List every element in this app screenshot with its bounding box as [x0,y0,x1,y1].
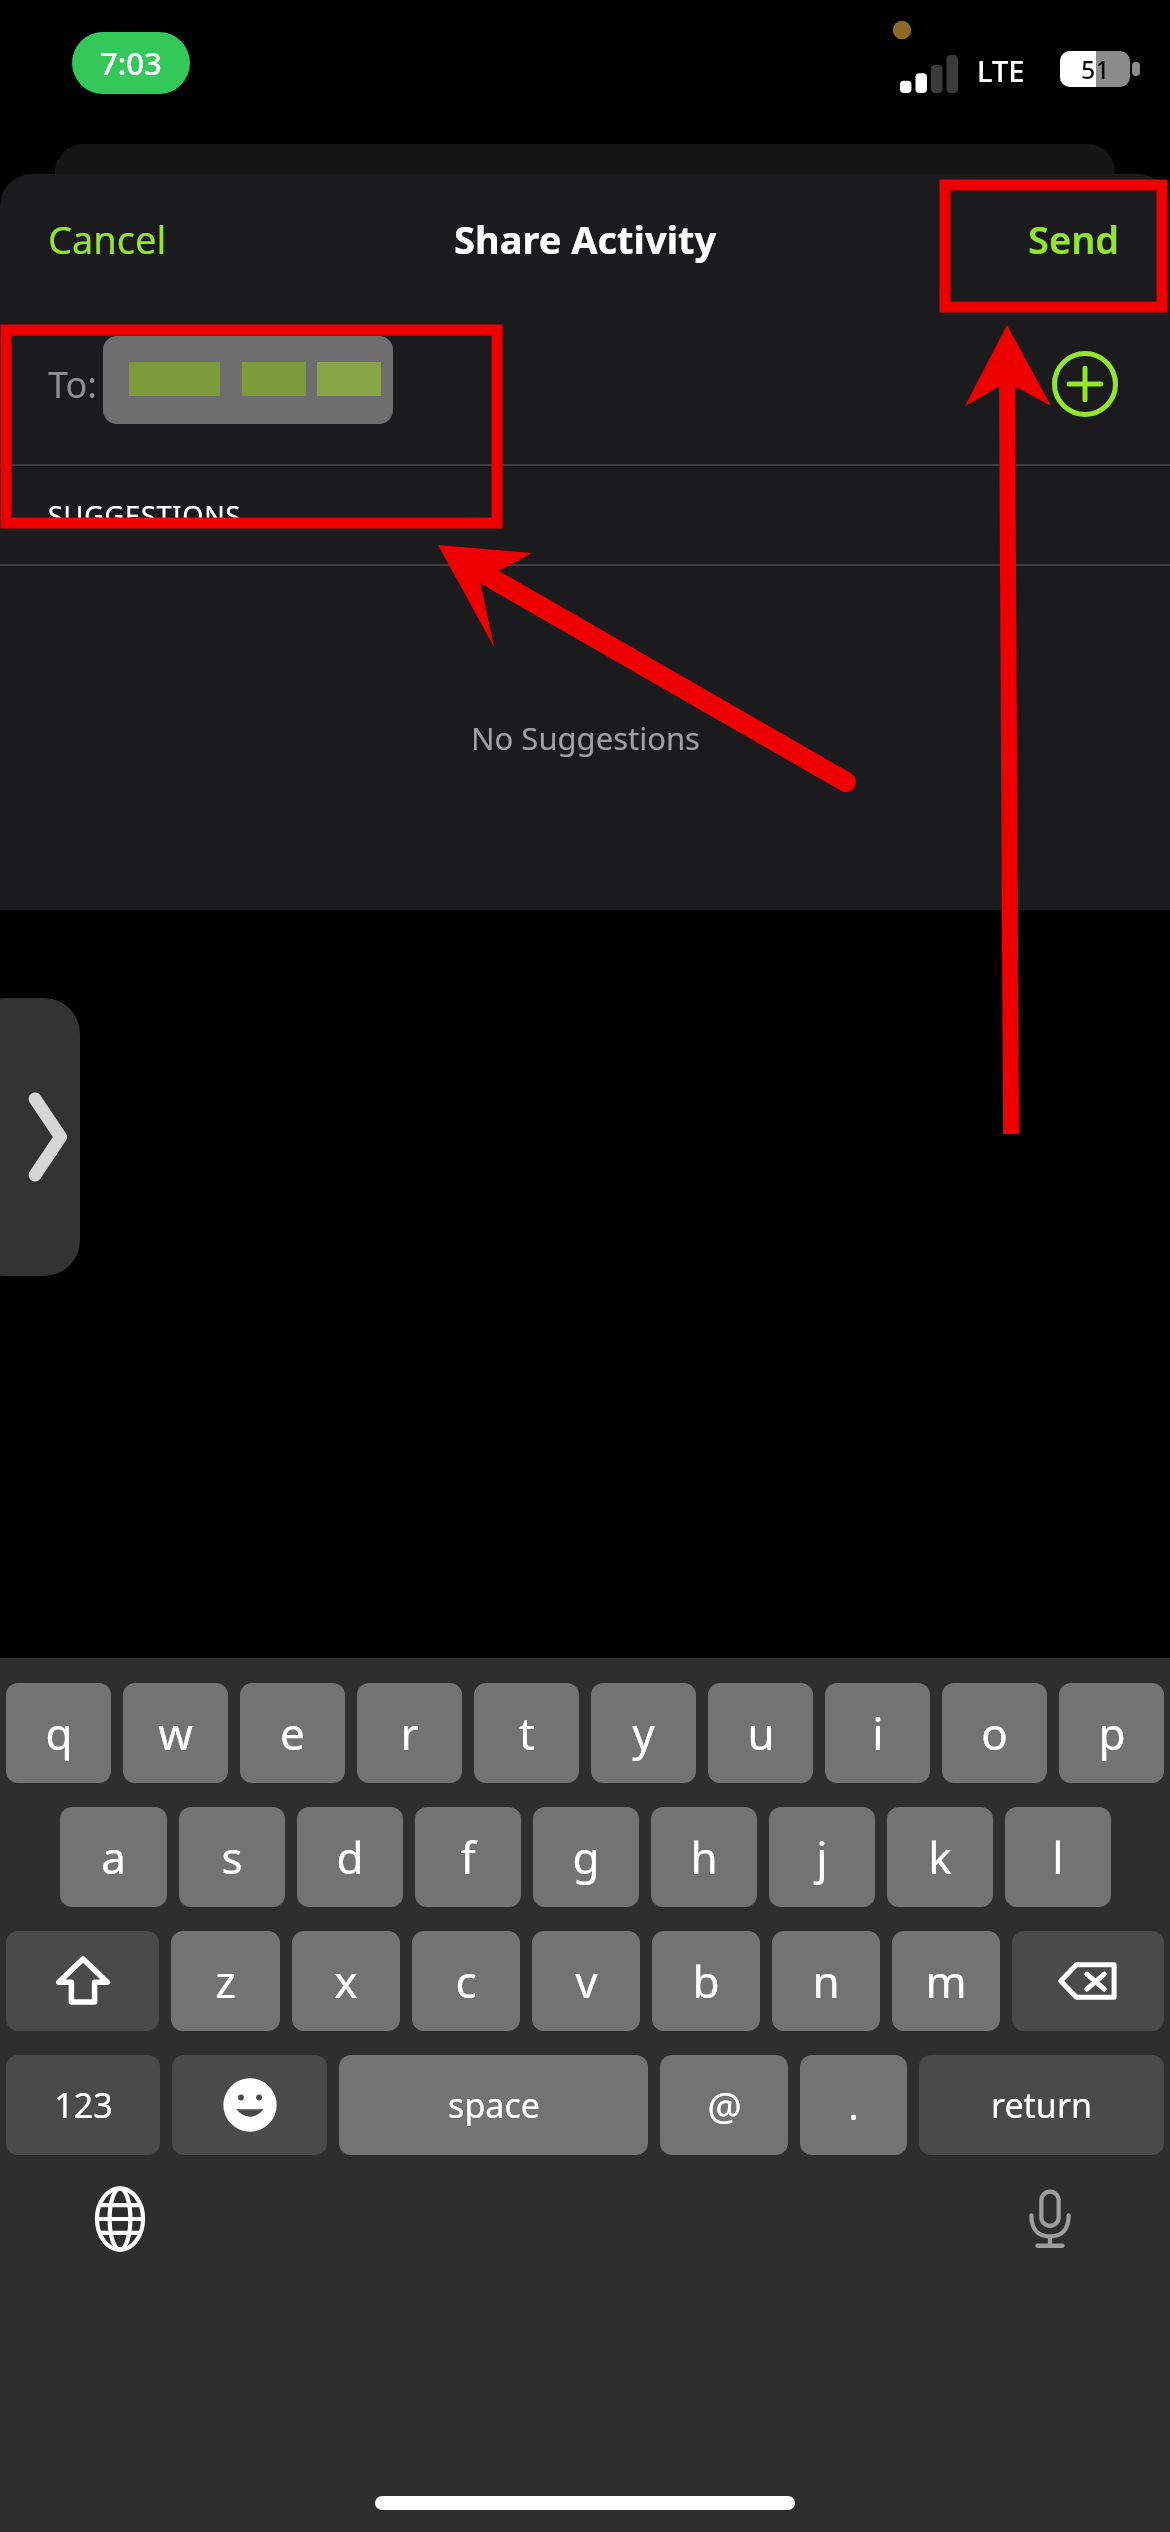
button[interactable]: Cancel [24,199,191,279]
button[interactable]: return [919,2055,1164,2155]
staticText: m [925,1951,967,2011]
staticText: Send [1028,213,1120,265]
staticText: Cancel [48,213,167,265]
staticText: No Suggestions [471,717,700,759]
button[interactable]: z [171,1931,280,2031]
staticText: w [158,1703,193,1763]
staticText: d [336,1827,364,1887]
button[interactable]: x [292,1931,400,2031]
staticText: b [692,1951,720,2011]
button[interactable]: Send [1004,199,1144,279]
staticText: q [45,1703,73,1763]
button[interactable]: i [825,1683,930,1783]
staticText: p [1098,1703,1126,1763]
staticText: LTE [977,51,1025,90]
staticText: Share Activity [454,213,717,265]
staticText: 7:03 [100,42,162,84]
staticText: u [747,1703,775,1763]
button[interactable]: Add contact [1044,343,1126,425]
staticText: f [460,1827,476,1887]
staticText: k [928,1827,952,1887]
staticText: return [991,2082,1092,2128]
button[interactable]: 123 [6,2055,160,2155]
staticText: v [575,1951,598,2011]
button[interactable]: w [123,1683,228,1783]
button[interactable]: a [60,1807,167,1907]
button[interactable]: Emoji [172,2055,327,2155]
button[interactable]: Dictation [1012,2181,1088,2257]
staticText: r [400,1703,419,1763]
staticText: t [519,1703,535,1763]
staticText: . [848,2079,859,2131]
button[interactable]: k [887,1807,993,1907]
staticText: SUGGESTIONS [48,497,242,534]
button[interactable]: e [240,1683,345,1783]
button[interactable]: p [1059,1683,1164,1783]
staticText: 51 [1081,52,1110,86]
button[interactable]: @ [660,2055,788,2155]
staticText: c [455,1951,477,2011]
button[interactable]: Shift [6,1931,159,2031]
button[interactable]: f [415,1807,521,1907]
button[interactable]: Change keyboard language [82,2181,158,2257]
staticText: h [690,1827,718,1887]
button[interactable]: t [474,1683,579,1783]
button[interactable]: g [533,1807,639,1907]
staticText: @ [707,2079,742,2131]
button[interactable]: b [652,1931,760,2031]
staticText: s [221,1827,243,1887]
button[interactable]: l [1005,1807,1111,1907]
button[interactable]: v [532,1931,640,2031]
button[interactable]: n [772,1931,880,2031]
button[interactable]: c [412,1931,520,2031]
button[interactable]: To: [0,304,1170,464]
staticText: y [632,1703,655,1763]
button[interactable]: y [591,1683,696,1783]
staticText: j [816,1827,828,1887]
staticText: space [448,2082,540,2128]
staticText: g [572,1827,600,1887]
staticText: l [1052,1827,1064,1887]
button[interactable]: space [339,2055,648,2155]
button[interactable]: j [769,1807,875,1907]
button[interactable]: o [942,1683,1047,1783]
staticText: o [981,1703,1008,1763]
staticText: x [334,1951,358,2011]
button[interactable]: r [357,1683,462,1783]
button[interactable]: q [6,1683,111,1783]
staticText: e [280,1703,305,1763]
button[interactable]: Open side panel [0,998,80,1276]
button[interactable]: m [892,1931,1000,2031]
button[interactable]: h [651,1807,757,1907]
staticText: a [101,1827,126,1887]
button[interactable]: d [297,1807,403,1907]
staticText: n [812,1951,840,2011]
button[interactable]: s [179,1807,285,1907]
button[interactable]: . [800,2055,907,2155]
staticText: 123 [54,2082,113,2128]
staticText: z [215,1951,236,2011]
button[interactable]: u [708,1683,813,1783]
button[interactable]: Backspace [1012,1931,1164,2031]
staticText: i [872,1703,884,1763]
staticText: To: [48,360,97,409]
